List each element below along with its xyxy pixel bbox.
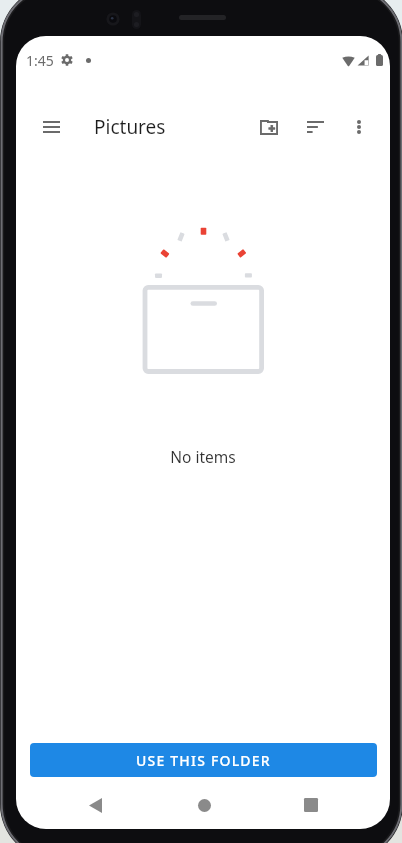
staticText: USE THIS FOLDER: [136, 751, 271, 770]
staticText: 1:45: [26, 51, 54, 70]
button[interactable]: Navigation menu: [29, 105, 73, 149]
button[interactable]: Create new folder: [247, 105, 291, 149]
button[interactable]: USE THIS FOLDER: [30, 743, 377, 777]
button[interactable]: More options: [337, 105, 381, 149]
button[interactable]: Home: [180, 781, 228, 829]
button[interactable]: Sort: [293, 105, 337, 149]
button[interactable]: Back: [71, 781, 119, 829]
staticText: No items: [16, 446, 390, 467]
staticText: Pictures: [94, 114, 166, 140]
button[interactable]: Recent apps: [287, 781, 335, 829]
